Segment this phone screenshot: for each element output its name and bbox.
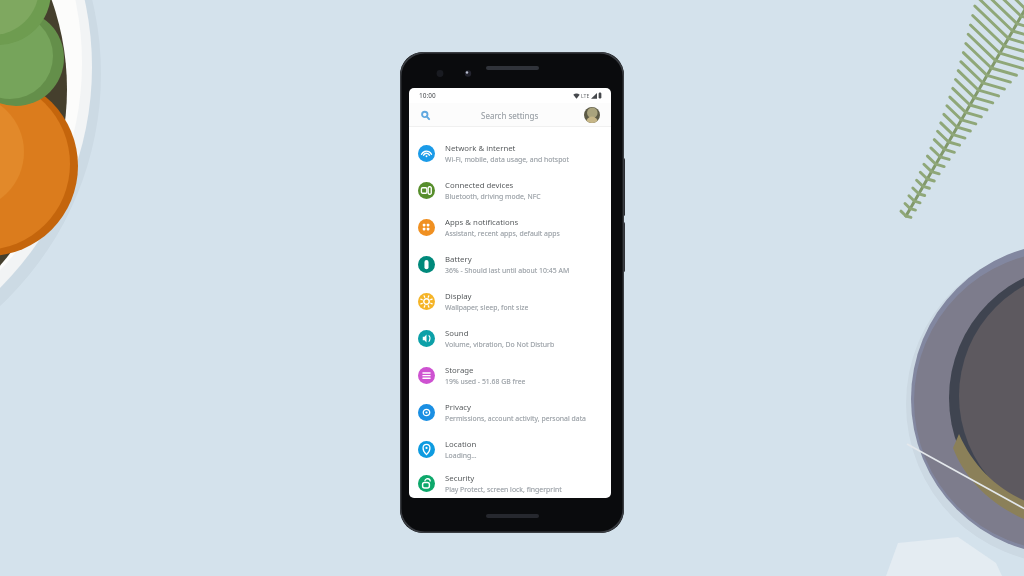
button[interactable]: Sound — [409, 320, 611, 357]
staticText: Sound — [445, 328, 469, 339]
staticText: Storage — [445, 365, 474, 376]
staticText: Permissions, account activity, personal … — [445, 414, 586, 423]
staticText: Security — [445, 473, 475, 484]
button[interactable]: Security — [409, 468, 611, 498]
staticText: 36% - Should last until about 10:45 AM — [445, 266, 570, 275]
staticText: Bluetooth, driving mode, NFC — [445, 192, 541, 201]
staticText: Connected devices — [445, 180, 514, 191]
button[interactable]: Display — [409, 283, 611, 320]
button[interactable]: Apps & notifications — [409, 209, 611, 246]
staticText: Wallpaper, sleep, font size — [445, 303, 529, 312]
button[interactable]: Account — [584, 107, 600, 123]
staticText: Volume, vibration, Do Not Disturb — [445, 340, 555, 349]
staticText: Loading... — [445, 451, 477, 460]
staticText: Network & internet — [445, 143, 516, 154]
staticText: Apps & notifications — [445, 217, 519, 228]
button[interactable]: Privacy — [409, 394, 611, 431]
button[interactable]: Search — [409, 103, 611, 127]
button[interactable]: Location — [409, 431, 611, 468]
staticText: Wi-Fi, mobile, data usage, and hotspot — [445, 155, 570, 164]
staticText: Play Protect, screen lock, fingerprint — [445, 485, 562, 494]
button[interactable]: Network & internet — [409, 135, 611, 172]
staticText: 10:00 — [419, 91, 436, 100]
staticText: 19% used - 51.68 GB free — [445, 377, 526, 386]
staticText: Search settings — [481, 110, 539, 121]
staticText: Display — [445, 291, 472, 302]
staticText: Privacy — [445, 402, 472, 413]
button[interactable]: Connected devices — [409, 172, 611, 209]
other: Search — [421, 111, 430, 120]
staticText: Location — [445, 439, 477, 450]
staticText: Battery — [445, 254, 472, 265]
button[interactable]: Battery — [409, 246, 611, 283]
staticText: LTE — [581, 92, 590, 99]
staticText: Assistant, recent apps, default apps — [445, 229, 560, 238]
button[interactable]: Storage — [409, 357, 611, 394]
